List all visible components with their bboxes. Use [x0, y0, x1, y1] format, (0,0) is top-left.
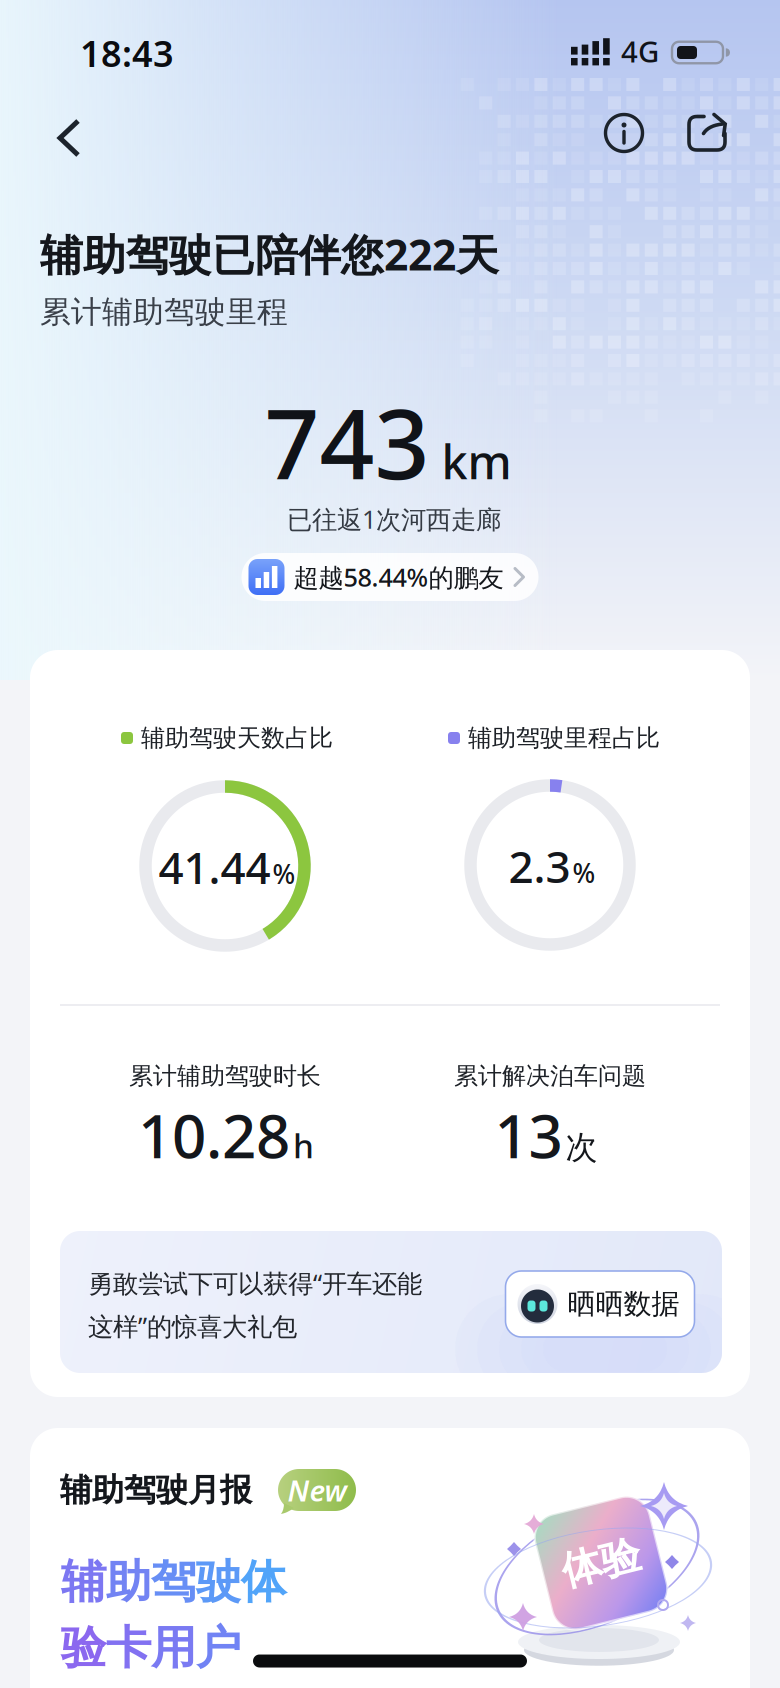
staticText: h: [293, 1123, 314, 1167]
staticText: 晒晒数据: [567, 1287, 679, 1321]
staticText: 已往返1次河西走廊: [287, 502, 501, 536]
staticText: 体验: [561, 1538, 641, 1587]
staticText: 18:43: [80, 29, 174, 77]
staticText: 41.44: [158, 838, 270, 896]
button[interactable]: 超越58.44%的鹏友: [241, 553, 538, 601]
staticText: 卡: [106, 1620, 151, 1676]
staticText: 超越58.44%的鹏友: [293, 560, 503, 594]
staticText: 10.28: [138, 1095, 290, 1175]
button[interactable]: Info: [596, 105, 652, 161]
staticText: 辅助驾驶里程占比: [468, 723, 660, 753]
button[interactable]: Share: [678, 104, 734, 160]
button[interactable]: Back: [28, 110, 108, 166]
staticText: 验: [61, 1620, 106, 1676]
staticText: 次: [565, 1128, 597, 1167]
staticText: 辅助驾驶天数占比: [141, 723, 333, 753]
button[interactable]: 辅助驾驶月报: [30, 1428, 750, 1688]
staticText: 累计辅助驾驶里程: [40, 293, 288, 331]
staticText: 勇敢尝试下可以获得“开车还能: [88, 1266, 422, 1300]
staticText: 助: [106, 1554, 151, 1610]
staticText: 户: [196, 1620, 241, 1676]
staticText: 驶: [196, 1554, 241, 1610]
staticText: km: [441, 430, 511, 492]
button[interactable]: 晒晒数据: [505, 1271, 694, 1337]
staticText: 用: [151, 1620, 196, 1676]
staticText: 累计辅助驾驶时长: [129, 1061, 321, 1091]
staticText: 辅助驾驶已陪伴您222天: [40, 226, 499, 282]
staticText: 辅助驾驶月报: [60, 1470, 252, 1510]
staticText: New: [287, 1470, 346, 1509]
staticText: %: [272, 856, 295, 891]
staticText: 体: [241, 1554, 286, 1610]
staticText: 743: [264, 378, 429, 506]
staticText: 4G: [621, 31, 659, 70]
staticText: 13: [494, 1095, 562, 1175]
staticText: 累计解决泊车问题: [454, 1061, 646, 1091]
staticText: 2.3: [508, 837, 570, 895]
staticText: 辅: [61, 1554, 106, 1610]
staticText: 这样”的惊喜大礼包: [88, 1309, 297, 1343]
staticText: %: [572, 855, 595, 890]
staticText: 驾: [151, 1554, 196, 1610]
